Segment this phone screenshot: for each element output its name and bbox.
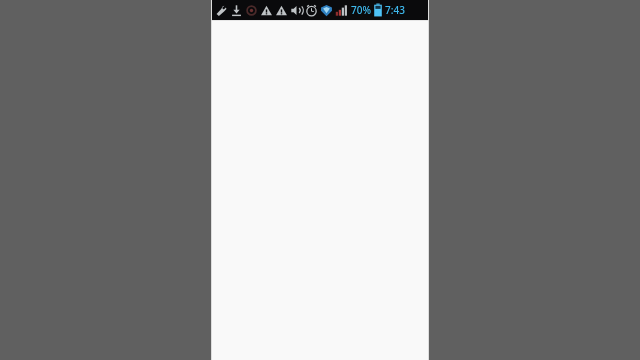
other: Screenshot [244,2,259,18]
other: Download complete [229,2,244,18]
other: Mobile signal [334,2,349,18]
other: Warning [274,2,289,18]
staticText: 70% [351,3,371,17]
staticText: 7:43 [385,3,405,17]
other: Developer options [214,2,229,18]
button[interactable]: Developer options [211,0,429,20]
other: Alarm set [304,2,319,18]
other: Warning [259,2,274,18]
other: Security [319,2,334,18]
other: Volume [289,2,304,18]
